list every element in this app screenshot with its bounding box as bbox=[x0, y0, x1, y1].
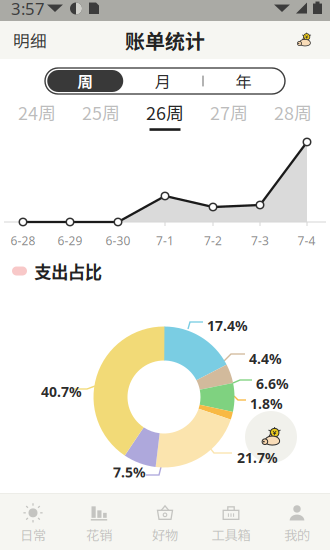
button[interactable]: 26周 bbox=[133, 100, 197, 130]
button[interactable]: 25周 bbox=[69, 100, 133, 130]
staticText: 7-4 bbox=[297, 232, 315, 249]
button[interactable]: 28周 bbox=[261, 100, 325, 130]
button[interactable]: 工具箱 bbox=[198, 499, 264, 547]
staticText: 7.5% bbox=[113, 462, 146, 482]
button[interactable]: 周 bbox=[47, 70, 123, 92]
staticText: 周 bbox=[77, 69, 93, 93]
button[interactable]: 日常 bbox=[0, 499, 66, 547]
button[interactable]: 明细 bbox=[4, 21, 56, 59]
staticText: 28周 bbox=[274, 99, 312, 125]
staticText: 7-1 bbox=[156, 232, 174, 249]
staticText: 支出占比 bbox=[34, 258, 102, 284]
staticText: 6-29 bbox=[57, 232, 82, 249]
staticText: 花销 bbox=[86, 525, 112, 544]
staticText: 6-28 bbox=[10, 232, 35, 249]
staticText: 年 bbox=[235, 69, 251, 93]
button[interactable]: 我的 bbox=[264, 499, 330, 547]
staticText: 我的 bbox=[284, 525, 310, 544]
button[interactable]: 24周 bbox=[5, 100, 69, 130]
staticText: 7-3 bbox=[251, 232, 269, 249]
staticText: 7-2 bbox=[204, 232, 222, 249]
staticText: 25周 bbox=[82, 99, 120, 125]
button[interactable]: Add record bbox=[245, 411, 297, 463]
staticText: 日常 bbox=[20, 525, 46, 544]
button[interactable]: 好物 bbox=[132, 499, 198, 547]
staticText: 40.7% bbox=[41, 382, 82, 401]
staticText: 1.8% bbox=[250, 394, 283, 413]
button[interactable]: Piggy bank bbox=[282, 21, 326, 59]
staticText: 26周 bbox=[146, 99, 184, 125]
button[interactable]: 花销 bbox=[66, 499, 132, 547]
staticText: 3:57 bbox=[11, 0, 45, 20]
staticText: 6.6% bbox=[256, 374, 289, 393]
button[interactable]: 27周 bbox=[197, 100, 261, 130]
staticText: 好物 bbox=[152, 525, 178, 544]
staticText: 21.7% bbox=[237, 448, 278, 467]
staticText: 4.4% bbox=[249, 349, 282, 368]
button[interactable]: 年 bbox=[204, 70, 283, 92]
staticText: 6-30 bbox=[105, 232, 130, 249]
staticText: 明细 bbox=[13, 28, 47, 52]
staticText: 工具箱 bbox=[211, 525, 250, 544]
staticText: 月 bbox=[155, 69, 171, 93]
staticText: 17.4% bbox=[207, 316, 248, 335]
staticText: 27周 bbox=[210, 99, 248, 125]
staticText: 24周 bbox=[18, 99, 56, 125]
staticText: 账单统计 bbox=[125, 25, 205, 54]
button[interactable]: 月 bbox=[123, 70, 202, 92]
